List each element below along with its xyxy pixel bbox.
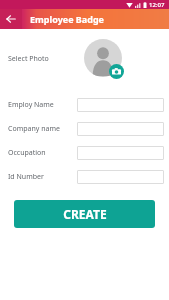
button[interactable]: Company name [0,117,169,141]
staticText: Company name [8,124,77,134]
staticText: Id Number [8,172,77,182]
button[interactable]: CREATE [14,200,155,228]
staticText: Occupation [8,148,77,158]
staticText: Select Photo [8,54,49,64]
button[interactable]: Occupation [0,141,169,165]
button[interactable]: Employ Name [0,93,169,117]
button[interactable]: Id Number [0,165,169,189]
button[interactable]: Back [0,9,22,29]
button[interactable]: Take photo [109,64,124,79]
staticText: CREATE [63,206,107,222]
staticText: Employ Name [8,100,77,110]
staticText: 12:07 [149,1,165,9]
button[interactable]: Select photo [84,39,124,79]
staticText: Employee Badge [30,13,104,25]
